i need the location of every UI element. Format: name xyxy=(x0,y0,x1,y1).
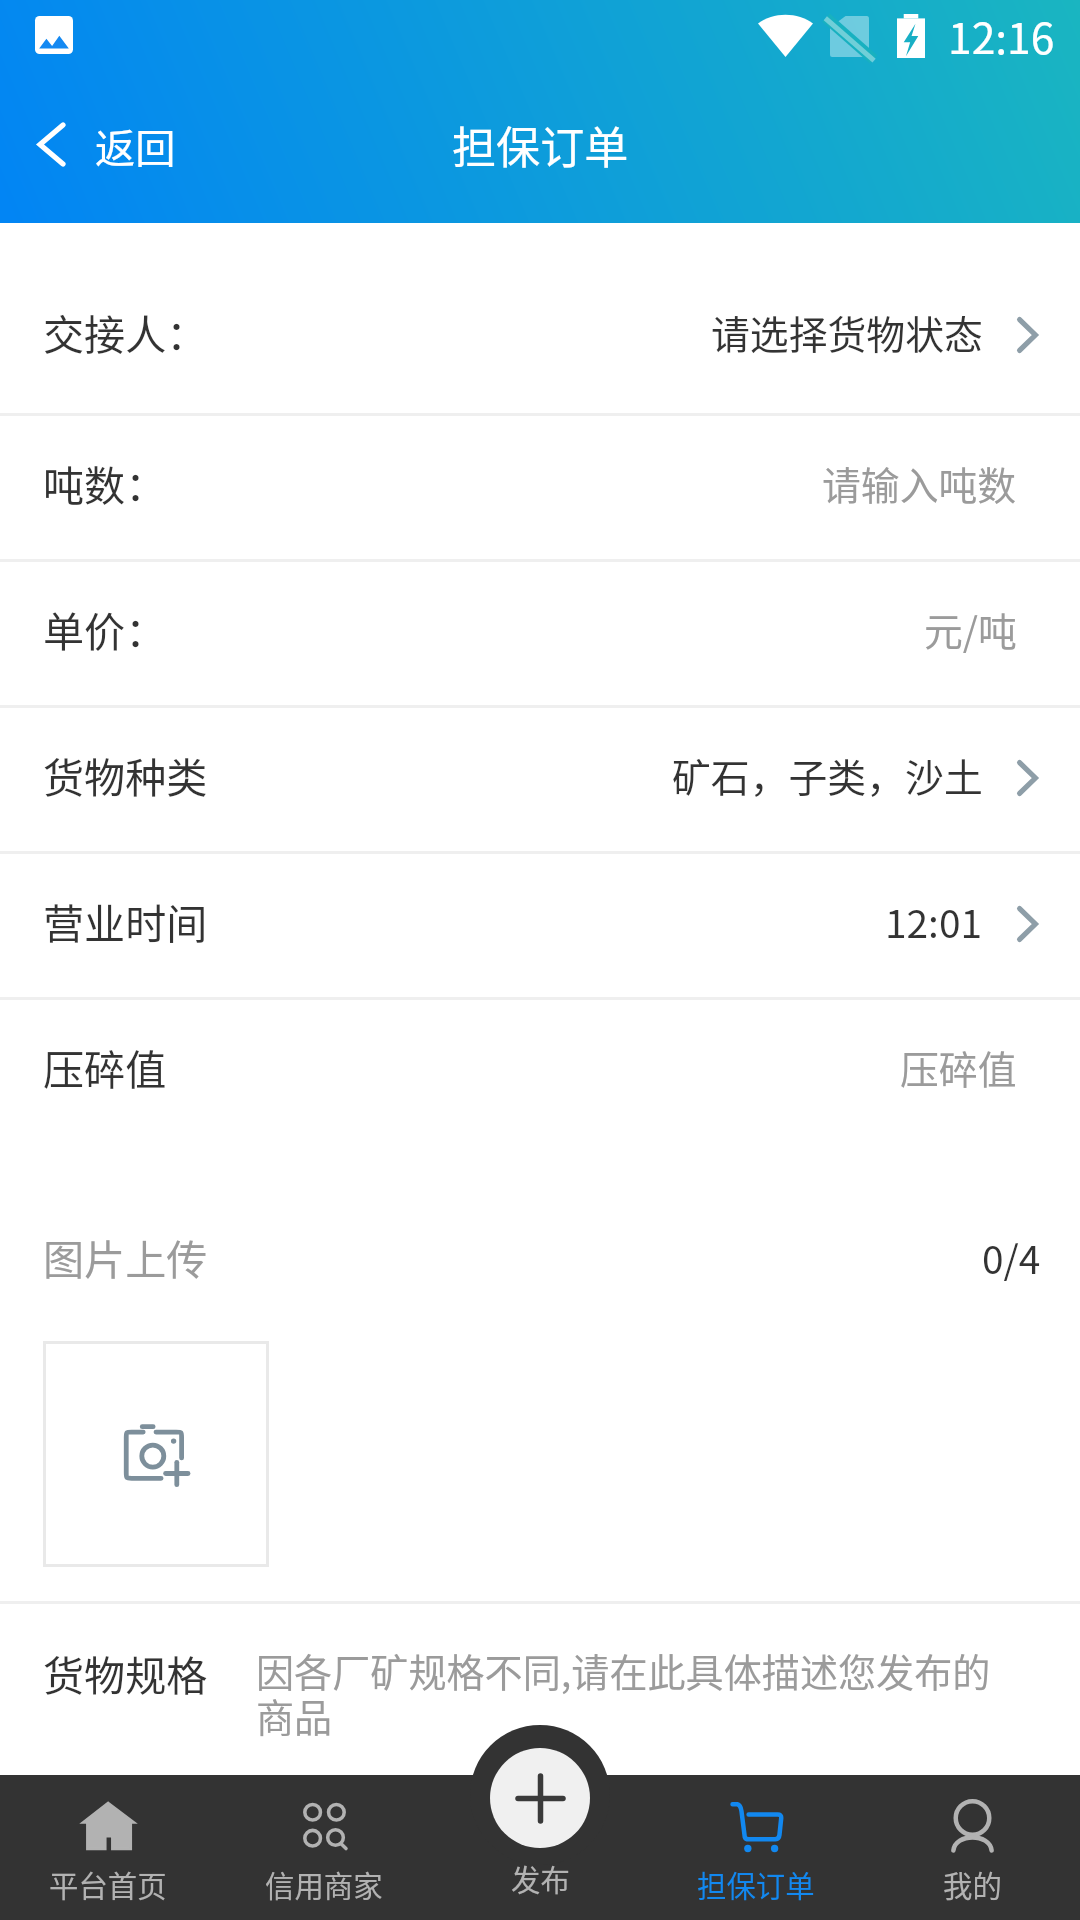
staticText: 因各厂矿规格不同,请在此具体描述您发布的商品 xyxy=(256,1643,1009,1743)
button[interactable]: 发布 xyxy=(216,1724,864,1920)
staticText: 返回 xyxy=(95,116,176,174)
staticText: 发布 xyxy=(511,1857,570,1900)
button[interactable]: 单价： xyxy=(0,562,1080,705)
button[interactable]: 担保订单 xyxy=(648,1775,864,1920)
button[interactable]: 吨数： xyxy=(0,416,1080,559)
button[interactable]: 压碎值 xyxy=(0,1000,1080,1143)
staticText: 平台首页 xyxy=(49,1863,167,1906)
staticText: 信用商家 xyxy=(265,1863,383,1906)
staticText: 担保订单 xyxy=(697,1863,815,1906)
button[interactable]: 平台首页 xyxy=(0,1775,216,1920)
staticText: 矿石，子类，沙土 xyxy=(672,747,983,803)
button[interactable]: 添加图片 xyxy=(43,1341,269,1567)
staticText: 吨数： xyxy=(43,453,167,513)
staticText: 我的 xyxy=(943,1863,1002,1906)
button[interactable]: 货物种类 xyxy=(0,708,1080,851)
staticText: 货物规格 xyxy=(43,1643,208,1703)
staticText: 0/4 xyxy=(982,1229,1041,1285)
staticText: 12:01 xyxy=(885,893,983,949)
staticText: 交接人： xyxy=(43,302,208,362)
button[interactable]: 我的 xyxy=(864,1775,1080,1920)
staticText: 单价： xyxy=(43,599,167,659)
button[interactable]: 返回 xyxy=(0,74,218,223)
staticText: 营业时间 xyxy=(43,891,208,951)
staticText: 图片上传 xyxy=(43,1227,208,1287)
button[interactable]: 交接人： xyxy=(0,260,1080,413)
staticText: 压碎值 xyxy=(43,1037,167,1097)
staticText: 担保订单 xyxy=(452,113,629,177)
staticText: 12:16 xyxy=(948,5,1055,67)
staticText: 元/吨 xyxy=(924,601,1017,657)
button[interactable]: 信用商家 xyxy=(216,1775,432,1920)
staticText: 压碎值 xyxy=(900,1039,1017,1095)
staticText: 请选择货物状态 xyxy=(711,304,983,360)
staticText: 货物种类 xyxy=(43,745,208,805)
staticText: 请输入吨数 xyxy=(822,455,1017,511)
button[interactable]: 营业时间 xyxy=(0,854,1080,997)
